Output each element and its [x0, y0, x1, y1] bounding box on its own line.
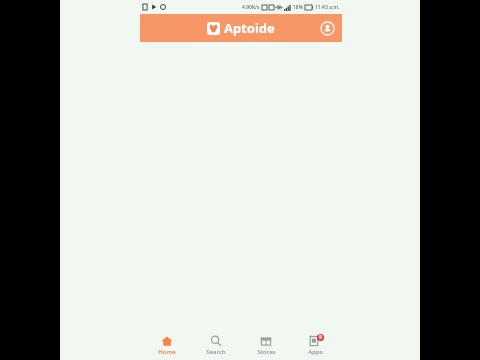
- button[interactable]: Stores: [244, 334, 288, 357]
- staticText: Home: [158, 348, 176, 356]
- staticText: 9: [319, 334, 322, 341]
- button[interactable]: Search: [194, 334, 238, 357]
- staticText: 18%: [293, 4, 303, 11]
- staticText: Stores: [257, 348, 276, 356]
- staticText: Apps: [308, 348, 323, 356]
- staticText: 11:43 a.m.: [315, 4, 340, 11]
- staticText: Aptoide: [224, 19, 275, 37]
- button[interactable]: 9: [293, 334, 337, 357]
- button[interactable]: Home: [145, 334, 189, 357]
- staticText: Search: [206, 348, 226, 356]
- staticText: 4.90K/s: [242, 4, 260, 11]
- button[interactable]: Account: [318, 19, 336, 37]
